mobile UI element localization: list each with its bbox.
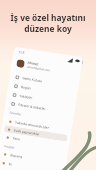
button[interactable]: Yaklaşan xyxy=(12,91,70,107)
button[interactable]: Alışveriş xyxy=(3,150,61,166)
staticText: Ev xyxy=(8,162,13,167)
button[interactable]: Bugün xyxy=(13,82,72,98)
staticText: ahmet@gmail.com xyxy=(27,65,50,72)
button[interactable]: Ahmet xyxy=(16,58,77,76)
staticText: Ahmet xyxy=(27,60,39,66)
staticText: İş ve özel hayatını xyxy=(10,12,86,23)
button[interactable]: Yakında okunacak işler xyxy=(8,117,66,133)
staticText: Alışveriş xyxy=(10,153,23,159)
staticText: düzene koy xyxy=(24,23,72,34)
staticText: Projeler xyxy=(4,144,16,150)
staticText: Yakında okunacak işler xyxy=(15,121,49,130)
staticText: 7:15 xyxy=(18,50,25,55)
staticText: Favoriler xyxy=(9,111,22,116)
staticText: Bugün xyxy=(21,85,31,90)
button[interactable]: Ev xyxy=(1,159,60,170)
staticText: Yaklaşan xyxy=(19,94,34,100)
button[interactable]: Filtreler & Etiketler xyxy=(11,100,69,116)
staticText: Gelen Kutusu xyxy=(22,76,43,83)
button[interactable]: Yarın xyxy=(5,133,64,149)
button[interactable]: Gelen Kutusu xyxy=(15,73,73,89)
staticText: Filtreler & Etiketler xyxy=(18,103,46,111)
staticText: Evde yapılacaklar xyxy=(14,128,40,136)
button[interactable]: Evde yapılacaklar xyxy=(7,125,65,141)
staticText: Yarın xyxy=(12,136,21,142)
